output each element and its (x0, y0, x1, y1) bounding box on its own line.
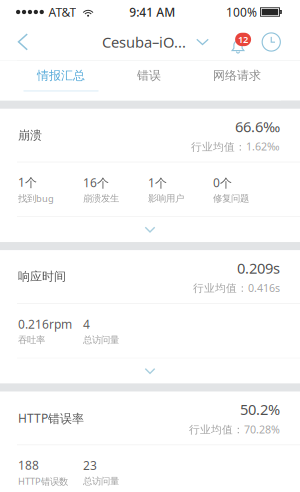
staticText: 23 (83, 457, 97, 473)
staticText: 12 (238, 33, 248, 46)
staticText: 修复问题 (213, 193, 249, 204)
staticText: 50.2% (240, 400, 280, 419)
staticText: 16个 (83, 175, 109, 191)
button[interactable]: Back (0, 24, 46, 60)
button[interactable]: Notifications (231, 27, 251, 57)
staticText: 总访问量 (83, 334, 119, 345)
staticText: 崩溃 (18, 128, 42, 142)
staticText: 总访问量 (83, 475, 119, 487)
button[interactable]: Expand (0, 217, 300, 242)
staticText: AT&T (48, 4, 76, 20)
staticText: 66.6‰ (235, 117, 280, 136)
staticText: 吞吐率 (18, 334, 45, 345)
staticText: 1个 (18, 174, 37, 190)
button[interactable]: Expand (0, 358, 300, 383)
staticText: HTTP错误数 (18, 475, 68, 487)
staticText: Cesuba–iO... (102, 32, 186, 52)
staticText: 错误 (137, 68, 161, 83)
button[interactable]: 情报汇总 (17, 61, 105, 101)
staticText: 找到bug (18, 192, 54, 205)
staticText: 9:41 AM (129, 4, 175, 20)
staticText: 响应时间 (18, 269, 66, 284)
staticText: 0.216rpm (18, 316, 72, 332)
staticText: 1个 (148, 175, 167, 191)
staticText: 0.209s (237, 258, 280, 278)
button[interactable]: Cesuba–iO... (102, 24, 209, 60)
button[interactable]: History (261, 27, 281, 57)
button[interactable]: 错误 (105, 61, 193, 101)
staticText: 崩溃发生 (83, 193, 119, 204)
staticText: 网络请求 (213, 68, 261, 83)
button[interactable]: 网络请求 (193, 61, 281, 101)
staticText: 0个 (213, 175, 232, 191)
staticText: 行业均值：70.28% (189, 422, 280, 436)
staticText: 100% (226, 4, 257, 20)
staticText: 188 (18, 457, 39, 473)
staticText: 行业均值：1.62‰ (191, 139, 280, 154)
staticText: 4 (83, 316, 90, 332)
staticText: 行业均值：0.416s (193, 281, 280, 295)
staticText: 情报汇总 (37, 68, 85, 83)
staticText: HTTP错误率 (18, 410, 84, 426)
staticText: 影响用户 (148, 193, 184, 204)
